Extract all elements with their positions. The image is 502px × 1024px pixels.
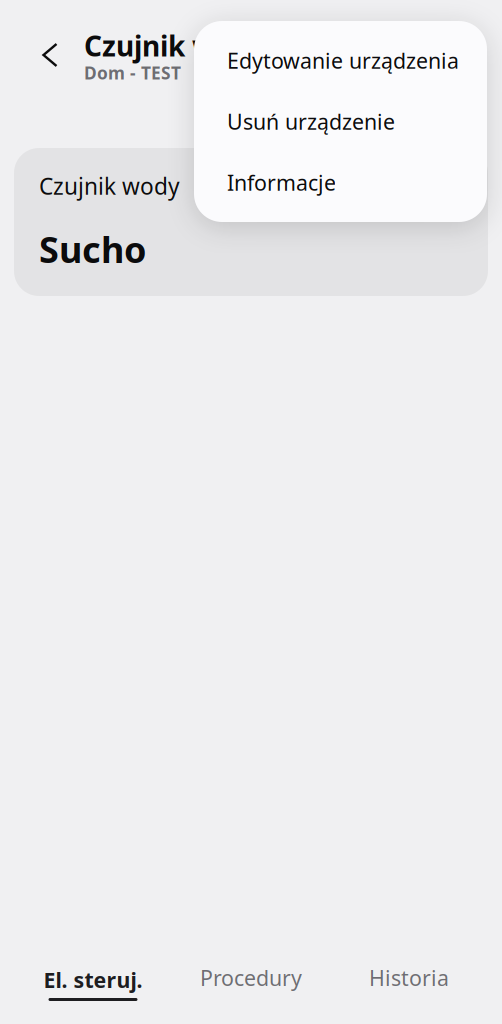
staticText: Sucho [39,225,147,273]
button[interactable]: El. steruj. [14,962,172,1001]
button[interactable]: Edytowanie urządzenia [194,30,487,91]
staticText: Procedury [200,964,302,992]
staticText: Usuń urządzenie [227,107,395,136]
staticText: Czujnik wody [84,27,268,64]
staticText: El. steruj. [43,966,142,994]
staticText: Historia [369,964,449,992]
staticText: Edytowanie urządzenia [227,46,459,75]
staticText: Dom - TEST [84,61,181,84]
button[interactable]: Usuń urządzenie [194,91,487,152]
staticText: Czujnik wody [39,171,180,201]
button[interactable]: Back [28,25,72,85]
button[interactable]: Historia [330,960,488,1003]
button[interactable]: Informacje [194,152,487,213]
staticText: Informacje [227,168,336,197]
button[interactable]: Procedury [172,960,330,1003]
